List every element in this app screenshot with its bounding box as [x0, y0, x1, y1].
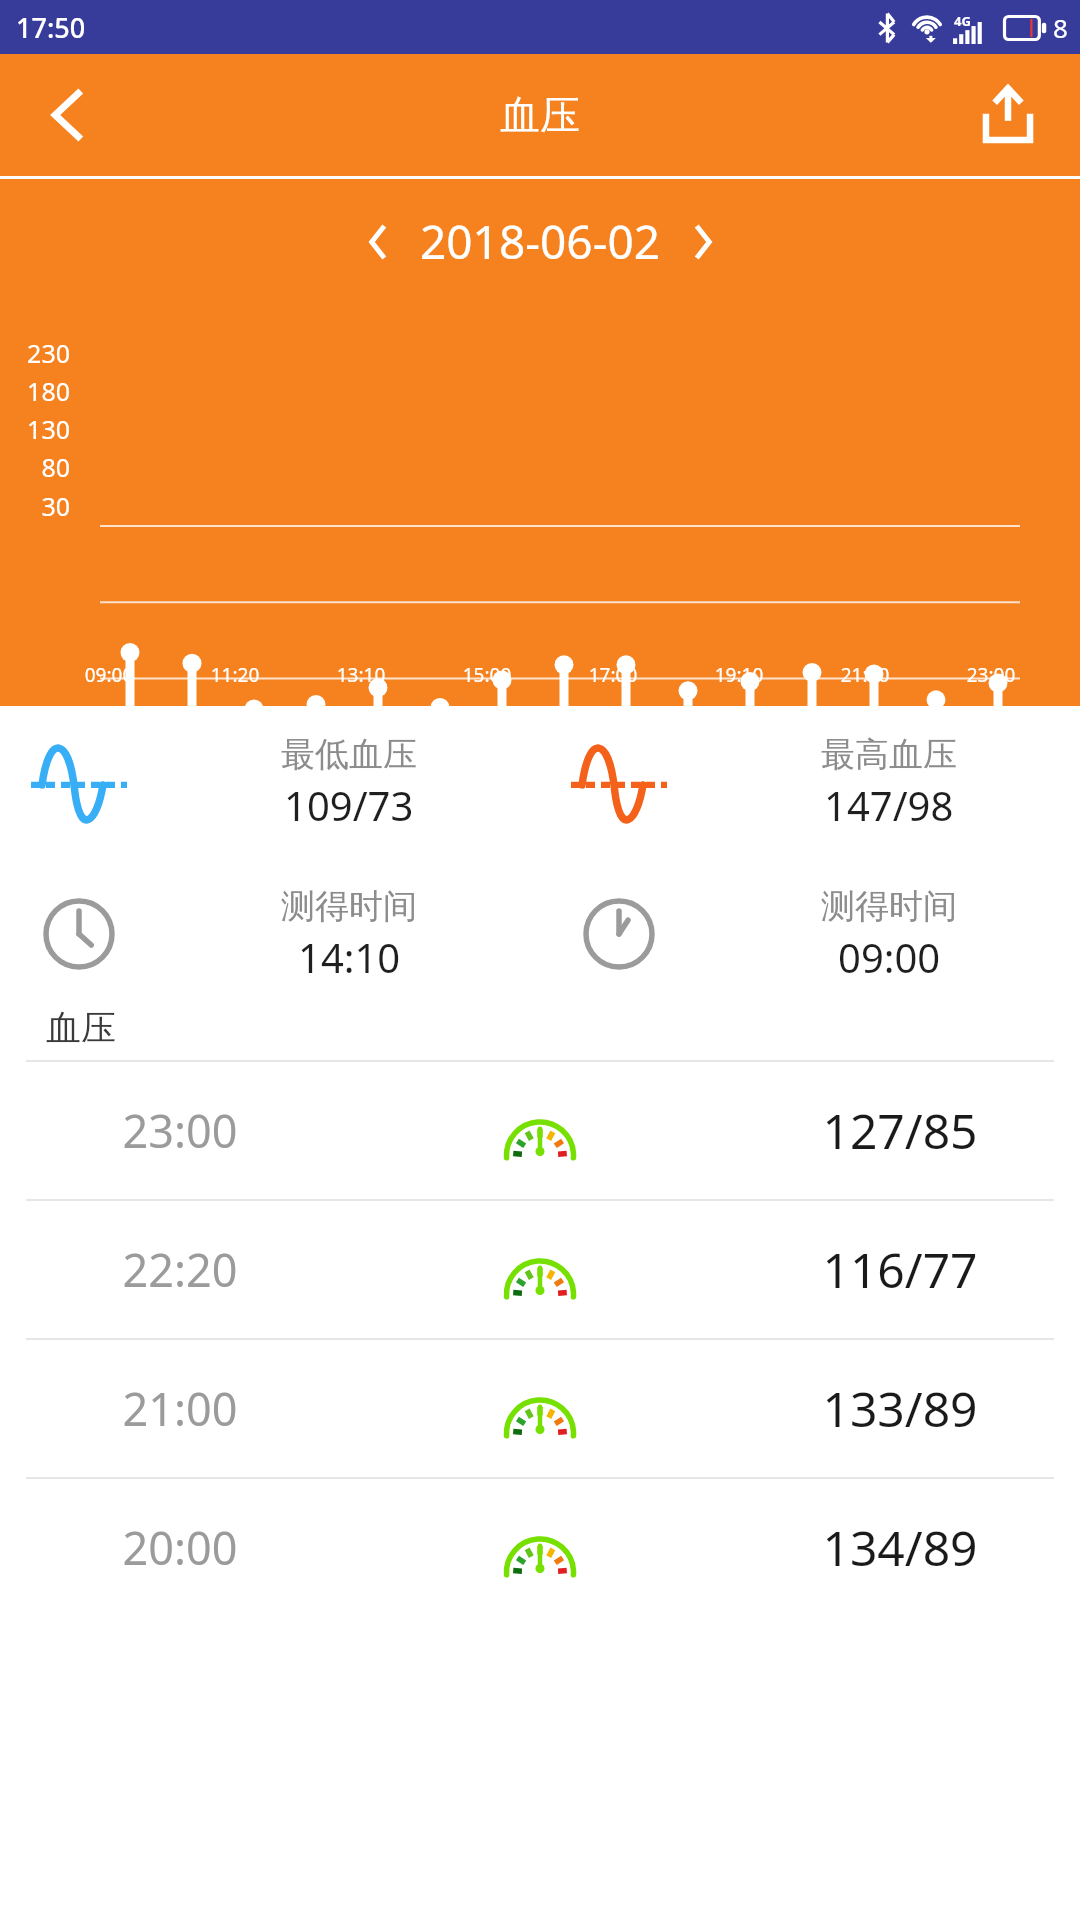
button[interactable]: Back [24, 71, 112, 159]
staticText: 23:00 [0, 1100, 360, 1161]
staticText: 22:20 [0, 1239, 360, 1300]
button[interactable]: Next day [673, 212, 733, 272]
staticText: 14:10 [298, 930, 401, 984]
staticText: 147/98 [824, 778, 954, 832]
staticText: 2018-06-02 [420, 210, 661, 273]
staticText: 测得时间 [281, 885, 417, 928]
button[interactable]: 21:00 [0, 1340, 1080, 1477]
staticText: 09:00 [838, 930, 941, 984]
staticText: 21:00 [802, 662, 928, 688]
staticText: 最低血压 [281, 733, 417, 776]
staticText: 109/73 [284, 778, 414, 832]
button[interactable]: 22:20 [0, 1201, 1080, 1338]
staticText: 180 [26, 374, 70, 408]
staticText: 23:00 [928, 662, 1054, 688]
staticText: 血压 [500, 90, 580, 140]
staticText: 20:00 [0, 1517, 360, 1578]
staticText: 17:50 [16, 9, 86, 46]
button[interactable]: Share [962, 69, 1054, 161]
staticText: 80 [26, 450, 70, 484]
staticText: 134/89 [720, 1515, 1080, 1580]
button[interactable]: Previous day [348, 212, 408, 272]
staticText: 21:00 [0, 1378, 360, 1439]
staticText: 15:00 [424, 662, 550, 688]
staticText: 8 [1053, 10, 1068, 45]
staticText: 测得时间 [821, 885, 957, 928]
staticText: 最高血压 [821, 733, 957, 776]
staticText: 230 [26, 336, 70, 370]
staticText: 血压 [46, 1006, 116, 1050]
button[interactable]: 23:00 [0, 1062, 1080, 1199]
staticText: 19:10 [676, 662, 802, 688]
staticText: 116/77 [720, 1237, 1080, 1302]
staticText: 17:00 [550, 662, 676, 688]
staticText: 11:20 [172, 662, 298, 688]
staticText: 127/85 [720, 1098, 1080, 1163]
staticText: 130 [26, 412, 70, 446]
button[interactable]: 20:00 [0, 1479, 1080, 1616]
staticText: 133/89 [720, 1376, 1080, 1441]
staticText: 30 [26, 489, 70, 523]
staticText: 4G [954, 12, 971, 30]
staticText: 13:10 [298, 662, 424, 688]
staticText: 09:00 [46, 662, 172, 688]
